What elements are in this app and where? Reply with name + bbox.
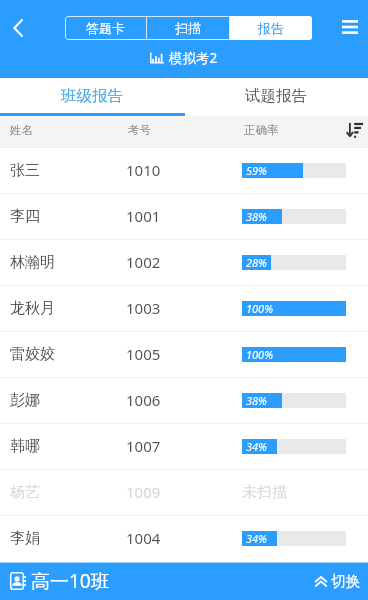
staticText: 34% (246, 439, 267, 454)
button[interactable]: 模拟考2 (150, 49, 218, 67)
button[interactable]: 高一10班 (10, 568, 110, 594)
button[interactable]: 杨艺 (0, 469, 368, 515)
button[interactable]: 林瀚明 (0, 239, 368, 285)
staticText: 林瀚明 (10, 253, 55, 272)
button[interactable]: 彭娜 (0, 377, 368, 423)
staticText: 班级报告 (61, 86, 123, 106)
staticText: 彭娜 (10, 391, 40, 410)
button[interactable]: 李娟 (0, 515, 368, 561)
staticText: 姓名 (10, 123, 33, 137)
staticText: 100% (246, 301, 273, 316)
staticText: 龙秋月 (10, 299, 55, 318)
button[interactable]: Back (2, 12, 34, 44)
button[interactable]: Menu (334, 11, 366, 43)
staticText: 雷姣姣 (10, 345, 55, 364)
staticText: 考号 (128, 123, 151, 137)
staticText: 高一10班 (31, 568, 110, 594)
staticText: 报告 (258, 20, 284, 36)
button[interactable]: 韩哪 (0, 423, 368, 469)
button[interactable]: 答题卡 (65, 16, 146, 40)
staticText: 杨艺 (10, 483, 40, 502)
staticText: 试题报告 (245, 86, 307, 106)
button[interactable]: 报告 (230, 16, 312, 40)
staticText: 1005 (126, 344, 161, 364)
staticText: 扫描 (175, 20, 201, 36)
button[interactable]: 切换 (315, 572, 360, 590)
staticText: 正确率 (244, 123, 279, 137)
staticText: 34% (246, 531, 267, 546)
staticText: 100% (246, 347, 273, 362)
button[interactable]: 试题报告 (184, 78, 368, 116)
button[interactable]: 扫描 (147, 16, 229, 40)
button[interactable]: 张三 (0, 147, 368, 193)
staticText: 韩哪 (10, 437, 40, 456)
staticText: 38% (246, 209, 267, 224)
staticText: 38% (246, 393, 267, 408)
staticText: 李四 (10, 207, 40, 226)
staticText: 李娟 (10, 529, 40, 548)
staticText: 1009 (126, 482, 161, 502)
staticText: 1006 (126, 390, 161, 410)
staticText: 1002 (126, 252, 161, 272)
staticText: 答题卡 (86, 20, 125, 36)
staticText: 1003 (126, 298, 161, 318)
staticText: 模拟考2 (169, 49, 218, 67)
staticText: 1010 (126, 160, 161, 180)
staticText: 未扫描 (242, 483, 287, 502)
staticText: 1001 (126, 206, 161, 226)
button[interactable]: 龙秋月 (0, 285, 368, 331)
staticText: 59% (246, 163, 267, 178)
staticText: 1007 (126, 436, 161, 456)
button[interactable]: 班级报告 (0, 78, 184, 116)
staticText: 28% (246, 255, 267, 270)
button[interactable]: 雷姣姣 (0, 331, 368, 377)
staticText: 1004 (126, 528, 161, 548)
button[interactable]: 李四 (0, 193, 368, 239)
staticText: 张三 (10, 161, 40, 180)
button[interactable]: Sort (340, 114, 368, 145)
staticText: 切换 (331, 572, 360, 590)
